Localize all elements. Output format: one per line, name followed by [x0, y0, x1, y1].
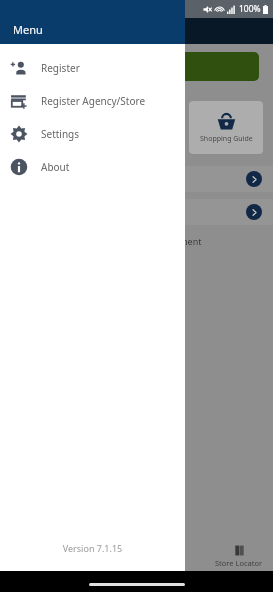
button[interactable]: Open: [0, 166, 273, 192]
staticText: Settings: [41, 127, 80, 141]
staticText: 100%: [239, 3, 261, 15]
staticText: Register: [41, 61, 80, 75]
staticText: Department: [150, 235, 202, 247]
other: Open: [246, 204, 262, 220]
button[interactable]: Register: [0, 51, 185, 84]
staticText: Menu: [13, 22, 43, 37]
staticText: Store Locator: [215, 558, 263, 568]
button[interactable]: Shopping Guide: [189, 101, 263, 154]
staticText: Version 7.1.15: [0, 542, 185, 554]
other: Open: [246, 171, 262, 187]
button[interactable]: Store Locator: [207, 545, 271, 568]
staticText: About: [41, 160, 70, 174]
button[interactable]: Settings: [0, 117, 185, 150]
button[interactable]: Register Agency/Store: [0, 84, 185, 117]
staticText: Shopping Guide: [200, 134, 253, 144]
button[interactable]: [14, 52, 259, 81]
button[interactable]: About: [0, 150, 185, 183]
button[interactable]: Open: [0, 199, 273, 225]
staticText: Register Agency/Store: [41, 94, 146, 108]
